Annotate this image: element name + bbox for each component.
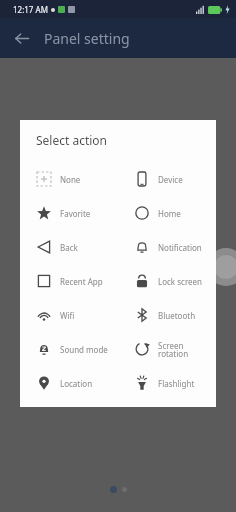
staticText: Flashlight — [158, 378, 195, 389]
staticText: Panel setting — [44, 29, 130, 48]
staticText: Back — [60, 242, 78, 253]
staticText: Wifi — [60, 310, 75, 321]
button[interactable]: Back — [6, 23, 36, 53]
button[interactable]: Panel handle — [207, 248, 236, 286]
button[interactable]: Recent App — [20, 264, 118, 298]
staticText: 12:17 AM — [13, 4, 48, 15]
button[interactable]: Bluetooth — [118, 298, 216, 332]
button[interactable]: Wifi — [20, 298, 118, 332]
button[interactable]: Notification — [118, 230, 216, 264]
button[interactable]: Screen rotation — [118, 332, 216, 366]
staticText: Recent App — [60, 276, 103, 287]
button[interactable]: Sound mode — [20, 332, 118, 366]
staticText: Bluetooth — [158, 310, 196, 321]
button[interactable]: Back — [20, 230, 118, 264]
staticText: Favorite — [60, 208, 91, 219]
staticText: Location — [60, 378, 93, 389]
button[interactable]: Location — [20, 366, 118, 400]
staticText: Notification — [158, 242, 202, 253]
button[interactable]: Flashlight — [118, 366, 216, 400]
staticText: Home — [158, 208, 181, 219]
staticText: Sound mode — [60, 344, 108, 355]
staticText: Select action — [36, 132, 108, 148]
button[interactable]: Device — [118, 162, 216, 196]
staticText: Device — [158, 174, 183, 185]
button[interactable]: None — [20, 162, 118, 196]
staticText: Screen rotation — [158, 340, 189, 359]
button[interactable]: Home — [118, 196, 216, 230]
button[interactable]: Lock screen — [118, 264, 216, 298]
button[interactable]: Favorite — [20, 196, 118, 230]
staticText: Lock screen — [158, 276, 203, 287]
staticText: None — [60, 174, 81, 185]
